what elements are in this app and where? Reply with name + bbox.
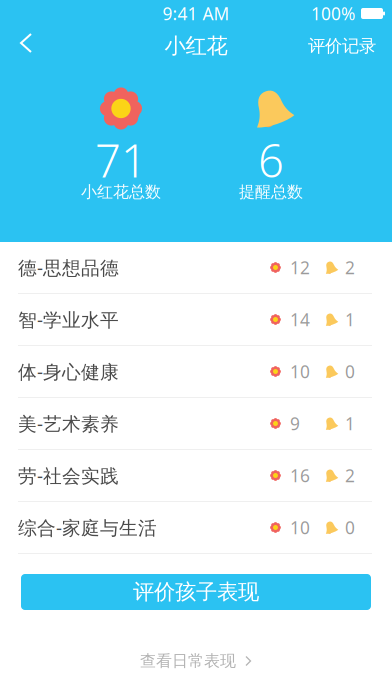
staticText: 1 bbox=[345, 308, 355, 331]
button[interactable]: 德-思想品德 bbox=[0, 242, 392, 294]
button[interactable]: 评价孩子表现 bbox=[21, 574, 371, 610]
button[interactable]: 查看日常表现 bbox=[140, 647, 252, 675]
staticText: 综合-家庭与生活 bbox=[18, 515, 157, 540]
staticText: 14 bbox=[290, 308, 310, 331]
staticText: 9:41 AM bbox=[162, 2, 229, 25]
button[interactable]: 评价记录 bbox=[308, 27, 392, 65]
button[interactable]: 智-学业水平 bbox=[0, 294, 392, 346]
staticText: 16 bbox=[290, 464, 310, 487]
button[interactable]: 体-身心健康 bbox=[0, 346, 392, 398]
button[interactable]: 综合-家庭与生活 bbox=[0, 502, 392, 554]
button[interactable]: 返回 bbox=[0, 27, 46, 65]
staticText: 评价孩子表现 bbox=[133, 579, 259, 605]
staticText: 9 bbox=[290, 412, 300, 435]
staticText: 体-身心健康 bbox=[18, 359, 119, 384]
staticText: 评价记录 bbox=[308, 35, 376, 57]
staticText: 劳-社会实践 bbox=[18, 463, 119, 488]
staticText: 智-学业水平 bbox=[18, 307, 119, 332]
staticText: 美-艺术素养 bbox=[18, 411, 119, 436]
staticText: 1 bbox=[345, 412, 355, 435]
staticText: 2 bbox=[345, 464, 355, 487]
staticText: 10 bbox=[290, 360, 310, 383]
staticText: 0 bbox=[345, 516, 355, 539]
staticText: 6 bbox=[258, 130, 284, 190]
staticText: 2 bbox=[345, 256, 355, 279]
staticText: 0 bbox=[345, 360, 355, 383]
staticText: 100% bbox=[311, 2, 355, 25]
button[interactable]: 美-艺术素养 bbox=[0, 398, 392, 450]
staticText: 查看日常表现 bbox=[140, 651, 236, 671]
staticText: 德-思想品德 bbox=[18, 255, 119, 280]
staticText: 提醒总数 bbox=[239, 182, 303, 202]
button[interactable]: 劳-社会实践 bbox=[0, 450, 392, 502]
staticText: 71 bbox=[95, 130, 147, 190]
staticText: 小红花 bbox=[164, 33, 227, 59]
staticText: 小红花总数 bbox=[81, 182, 161, 202]
staticText: 10 bbox=[290, 516, 310, 539]
staticText: 12 bbox=[290, 256, 310, 279]
